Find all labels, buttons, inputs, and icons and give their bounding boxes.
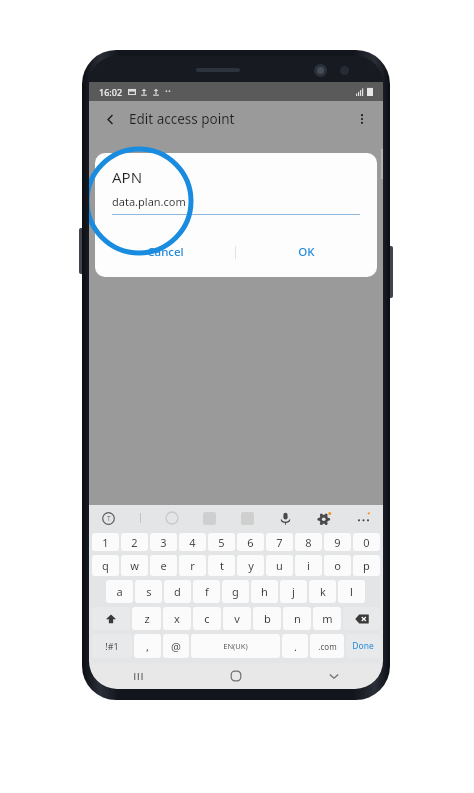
staticText: 1 — [102, 535, 109, 550]
staticText: t — [220, 558, 224, 573]
staticText: 4 — [189, 535, 196, 550]
button[interactable]: !#1 — [92, 634, 132, 658]
button[interactable]: More options — [351, 108, 373, 130]
button[interactable]: c — [193, 607, 221, 630]
button[interactable]: a — [106, 580, 133, 603]
staticText: data.plan.com — [112, 194, 186, 209]
button[interactable]: u — [266, 555, 293, 576]
button[interactable]: 3 — [150, 533, 177, 551]
button[interactable]: z — [132, 607, 161, 630]
staticText: 7 — [276, 535, 283, 550]
button[interactable]: l — [338, 580, 365, 603]
button[interactable]: j — [280, 580, 307, 603]
button[interactable]: 8 — [295, 533, 322, 551]
staticText: d — [174, 584, 181, 599]
button[interactable]: t — [208, 555, 235, 576]
button[interactable]: 2 — [121, 533, 148, 551]
staticText: . — [294, 639, 297, 654]
staticText: v — [234, 611, 240, 626]
button[interactable]: More — [356, 511, 371, 526]
button[interactable]: Shift — [92, 607, 130, 630]
button[interactable]: b — [253, 607, 281, 630]
button[interactable]: Home — [187, 663, 285, 689]
button[interactable]: , — [134, 634, 161, 658]
staticText: w — [130, 558, 139, 573]
button[interactable]: Settings — [317, 511, 332, 526]
staticText: f — [205, 584, 209, 599]
staticText: 16:02 — [99, 86, 123, 98]
staticText: EN(UK) — [223, 641, 248, 651]
button[interactable]: r — [179, 555, 206, 576]
button[interactable]: q — [92, 555, 119, 576]
staticText: e — [160, 558, 167, 573]
staticText: Done — [352, 640, 374, 652]
staticText: m — [322, 611, 333, 626]
button[interactable]: Voice input — [278, 511, 293, 526]
staticText: k — [320, 584, 326, 599]
button[interactable]: 0 — [353, 533, 380, 551]
staticText: 9 — [334, 535, 341, 550]
staticText: a — [116, 584, 123, 599]
button[interactable]: OK — [236, 235, 377, 269]
button[interactable]: n — [283, 607, 311, 630]
staticText: z — [144, 611, 150, 626]
button[interactable]: k — [309, 580, 336, 603]
staticText: T — [107, 514, 111, 523]
staticText: q — [102, 558, 109, 573]
button[interactable]: d — [164, 580, 191, 603]
staticText: i — [307, 558, 310, 573]
button[interactable]: w — [121, 555, 148, 576]
button[interactable]: Recents — [89, 663, 187, 689]
staticText: Edit access point — [129, 110, 235, 128]
staticText: 6 — [247, 535, 254, 550]
staticText: c — [204, 611, 210, 626]
staticText: r — [190, 558, 195, 573]
staticText: APN — [112, 167, 143, 187]
staticText: g — [232, 584, 239, 599]
staticText: u — [276, 558, 283, 573]
button[interactable]: e — [150, 555, 177, 576]
button[interactable]: 7 — [266, 533, 293, 551]
staticText: y — [248, 558, 254, 573]
button[interactable]: EN(UK) — [191, 634, 280, 658]
staticText: h — [261, 584, 268, 599]
button[interactable]: f — [193, 580, 220, 603]
staticText: 5 — [218, 535, 225, 550]
staticText: o — [334, 558, 341, 573]
button[interactable]: 9 — [324, 533, 351, 551]
staticText: !#1 — [105, 640, 119, 652]
button[interactable]: . — [282, 634, 308, 658]
button[interactable]: .com — [310, 634, 344, 658]
button[interactable]: x — [163, 607, 191, 630]
button[interactable]: Backspace — [343, 607, 380, 630]
button[interactable]: 6 — [237, 533, 264, 551]
button[interactable]: p — [353, 555, 380, 576]
button[interactable]: Back — [99, 108, 121, 130]
button[interactable]: Translate — [101, 511, 116, 526]
button[interactable]: y — [237, 555, 264, 576]
button[interactable]: o — [324, 555, 351, 576]
staticText: .com — [318, 641, 337, 652]
button[interactable]: 4 — [179, 533, 206, 551]
button[interactable]: h — [251, 580, 278, 603]
button[interactable]: Emoji — [165, 511, 179, 525]
button[interactable]: v — [223, 607, 251, 630]
staticText: p — [363, 558, 370, 573]
button[interactable]: @ — [163, 634, 189, 658]
button[interactable]: g — [222, 580, 249, 603]
button[interactable]: s — [135, 580, 162, 603]
button[interactable]: 5 — [208, 533, 235, 551]
button[interactable]: Done — [346, 634, 380, 658]
staticText: Internet — [105, 172, 138, 184]
staticText: APN — [105, 202, 132, 220]
staticText: , — [146, 639, 149, 654]
button[interactable]: i — [295, 555, 322, 576]
staticText: OK — [298, 244, 315, 260]
button[interactable]: Cancel — [95, 235, 235, 269]
staticText: n — [294, 611, 301, 626]
button[interactable]: 1 — [92, 533, 119, 551]
button[interactable]: m — [313, 607, 341, 630]
button[interactable]: Hide keyboard — [285, 663, 383, 689]
